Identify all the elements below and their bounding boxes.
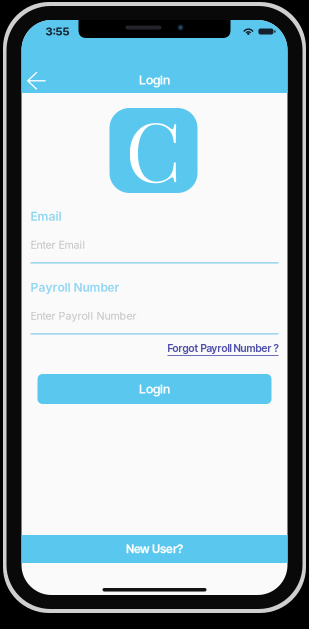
- staticText: Login: [139, 381, 170, 397]
- button[interactable]: New User?: [21, 535, 287, 563]
- staticText: Enter Payroll Number: [30, 309, 136, 322]
- staticText: Forgot Payroll Number ?: [167, 342, 278, 355]
- staticText: Email: [30, 209, 61, 223]
- staticText: New User?: [126, 542, 183, 556]
- button[interactable]: Login: [37, 374, 271, 404]
- staticText: 3:55: [45, 25, 69, 38]
- staticText: Enter Email: [30, 238, 85, 251]
- staticText: C: [125, 94, 181, 203]
- button[interactable]: Back: [18, 66, 54, 96]
- button[interactable]: Forgot Payroll Number ?: [167, 342, 278, 356]
- staticText: Payroll Number: [30, 280, 119, 294]
- staticText: Login: [139, 72, 170, 88]
